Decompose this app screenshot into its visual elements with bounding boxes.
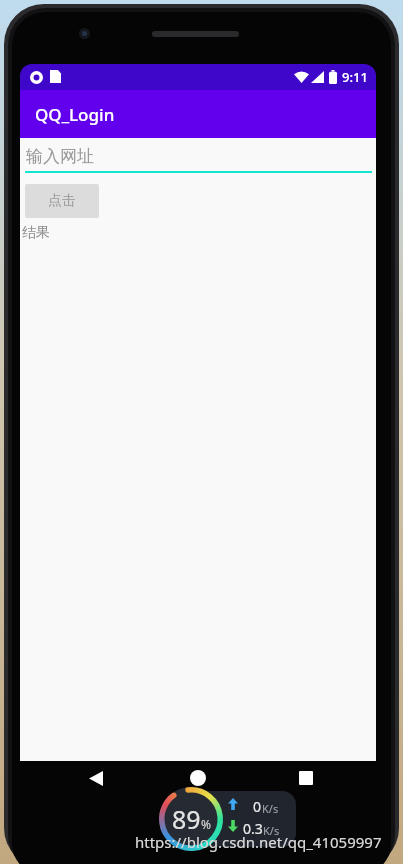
staticText: 0	[253, 797, 262, 816]
staticText: 89	[172, 802, 201, 836]
staticText: K/s	[263, 823, 280, 838]
button[interactable]: Back	[80, 762, 112, 794]
staticText: 输入网址	[26, 146, 94, 167]
staticText: QQ_Login	[35, 103, 115, 126]
staticText: K/s	[262, 801, 279, 816]
staticText: %	[201, 816, 211, 832]
staticText: 点击	[48, 192, 76, 210]
button[interactable]: 输入网址	[20, 144, 376, 173]
staticText: https://blog.csdn.net/qq_41059997	[135, 832, 382, 852]
staticText: 结果	[22, 224, 50, 242]
button[interactable]: 点击	[25, 184, 99, 218]
staticText: 0.3	[243, 819, 263, 838]
button[interactable]: Home	[182, 762, 214, 794]
staticText: 9:11	[342, 68, 368, 86]
button[interactable]: Recent apps	[290, 762, 322, 794]
